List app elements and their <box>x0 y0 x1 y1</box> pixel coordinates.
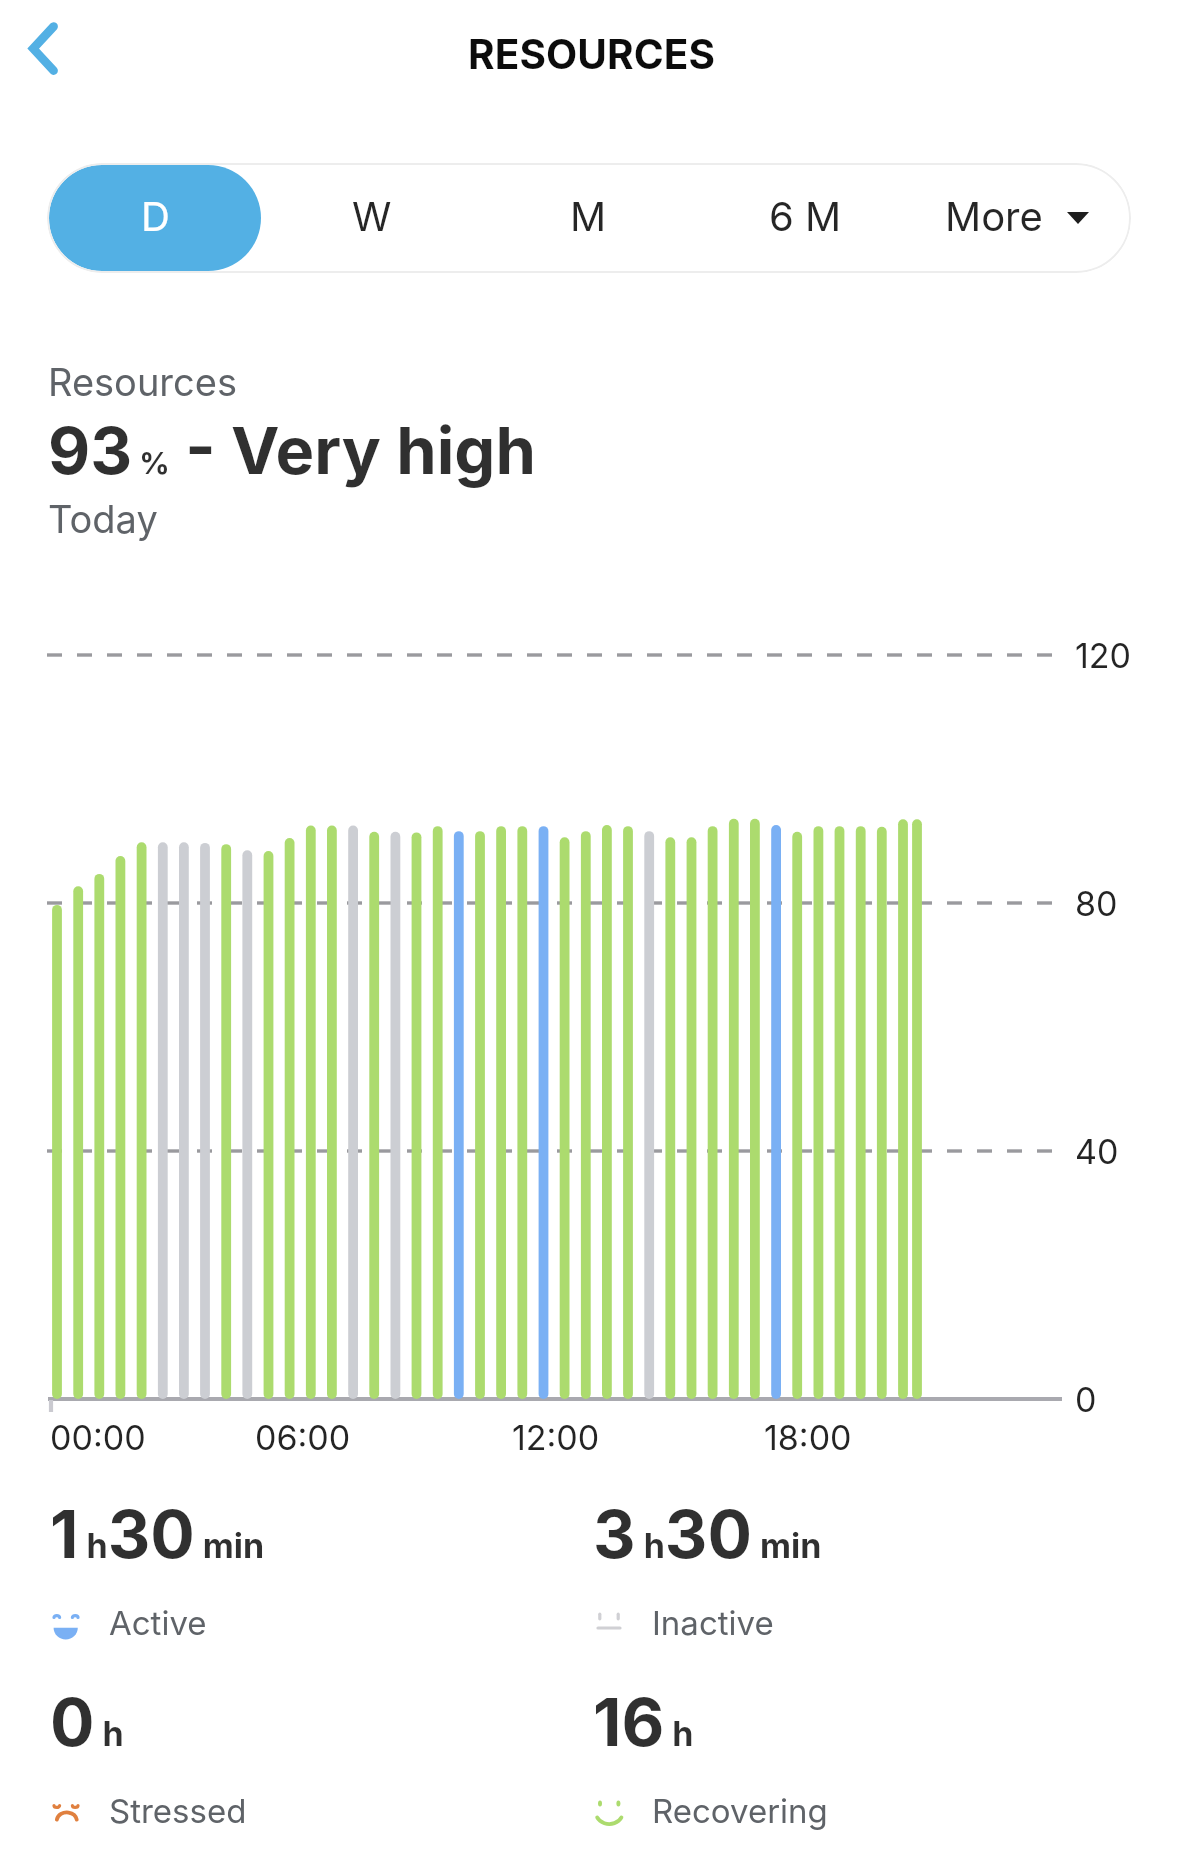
button[interactable]: 1 h30 min <box>49 1494 529 1654</box>
staticText: 00:00 <box>50 1417 146 1458</box>
staticText: 120 <box>1075 635 1132 676</box>
staticText: Today <box>48 496 158 542</box>
staticText: D <box>141 192 170 240</box>
staticText: Resources <box>48 359 237 405</box>
staticText: M <box>570 192 607 240</box>
staticText: Active <box>109 1603 207 1643</box>
button[interactable]: M <box>480 163 697 273</box>
staticText: 40 <box>1075 1131 1119 1172</box>
staticText: Recovering <box>652 1791 828 1831</box>
staticText: 93 % - Very high <box>48 411 536 490</box>
staticText: Stressed <box>109 1791 247 1831</box>
staticText: 16 h <box>593 1682 694 1762</box>
button[interactable]: D <box>49 165 261 271</box>
button[interactable]: W <box>263 163 480 273</box>
staticText: 0 h <box>50 1682 124 1762</box>
button[interactable]: Back <box>4 4 84 94</box>
staticText: 6 M <box>769 192 842 240</box>
staticText: 06:00 <box>255 1417 351 1458</box>
staticText: 80 <box>1075 883 1118 924</box>
button[interactable]: 16 h <box>592 1682 1072 1842</box>
staticText: RESOURCES <box>468 30 716 79</box>
staticText: 12:00 <box>512 1417 600 1458</box>
staticText: 0 <box>1075 1379 1097 1420</box>
button[interactable]: 3 h30 min <box>592 1494 1072 1654</box>
staticText: 3 h30 min <box>593 1494 822 1574</box>
staticText: W <box>352 192 392 240</box>
button[interactable]: 0 h <box>49 1682 529 1842</box>
staticText: 18:00 <box>764 1417 852 1458</box>
button[interactable]: More <box>914 163 1131 273</box>
button[interactable]: 6 M <box>697 163 914 273</box>
staticText: 1 h30 min <box>50 1494 265 1574</box>
staticText: Inactive <box>652 1603 774 1643</box>
staticText: More <box>945 192 1043 240</box>
